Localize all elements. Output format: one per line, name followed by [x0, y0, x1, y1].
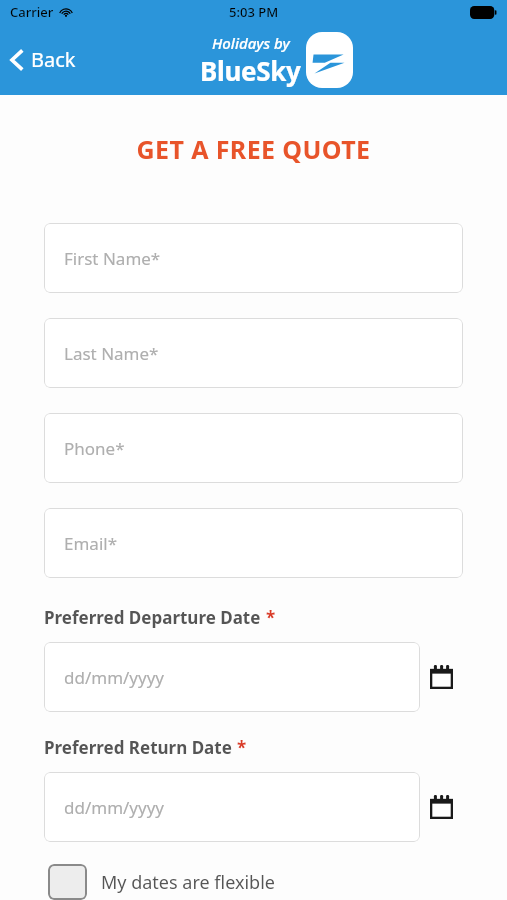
staticText: Phone* [64, 437, 125, 460]
staticText: Holidays by [212, 33, 290, 53]
button[interactable]: Phone* [44, 413, 463, 483]
staticText: Email* [64, 532, 118, 555]
staticText: First Name* [64, 247, 161, 270]
staticText: 5:03 PM [229, 3, 279, 21]
staticText: dd/mm/yyyy [64, 666, 165, 689]
staticText: * [266, 606, 276, 629]
button[interactable]: Open calendar [420, 785, 463, 829]
staticText: dd/mm/yyyy [64, 796, 165, 819]
staticText: Carrier [10, 3, 54, 21]
staticText: Last Name* [64, 342, 159, 365]
button[interactable]: Open calendar [420, 655, 463, 699]
button[interactable]: Email* [44, 508, 463, 578]
staticText: * [237, 736, 247, 759]
staticText: GET A FREE QUOTE [0, 132, 507, 166]
staticText: Back [31, 46, 76, 73]
button[interactable]: Last Name* [44, 318, 463, 388]
staticText: Preferred Departure Date [44, 606, 261, 629]
button[interactable]: First Name* [44, 223, 463, 293]
staticText: BlueSky [200, 53, 301, 88]
staticText: My dates are flexible [101, 870, 275, 895]
staticText: Preferred Return Date [44, 736, 232, 759]
button[interactable]: Back [0, 38, 90, 81]
button[interactable]: My dates are flexible [44, 864, 463, 900]
button[interactable]: dd/mm/yyyy [44, 772, 420, 842]
button[interactable]: dd/mm/yyyy [44, 642, 420, 712]
